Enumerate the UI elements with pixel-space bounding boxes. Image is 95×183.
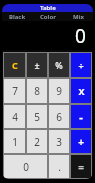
button[interactable]: 7 — [4, 79, 25, 103]
button[interactable]: 9 — [49, 79, 69, 103]
staticText: Table — [40, 4, 56, 12]
button[interactable]: Percent — [49, 53, 69, 77]
staticText: Black — [9, 13, 26, 21]
button[interactable]: Mix — [63, 12, 93, 21]
staticText: ± — [34, 59, 40, 71]
button[interactable]: 5 — [27, 105, 47, 128]
button[interactable]: 8 — [27, 79, 47, 103]
staticText: 8 — [34, 84, 40, 98]
staticText: . — [58, 160, 61, 174]
button[interactable]: Multiply — [71, 79, 91, 103]
staticText: C — [12, 59, 18, 71]
staticText: Mix — [73, 13, 84, 21]
staticText: 4 — [12, 110, 18, 124]
staticText: 0 — [23, 160, 29, 174]
staticText: 6 — [56, 110, 62, 124]
staticText: X — [78, 85, 85, 97]
button[interactable]: . — [49, 155, 69, 178]
staticText: ÷ — [78, 59, 84, 71]
button[interactable]: Divide — [71, 53, 91, 77]
staticText: % — [55, 59, 63, 71]
staticText: = — [78, 160, 84, 174]
button[interactable]: 4 — [4, 105, 25, 128]
staticText: 2 — [34, 135, 40, 149]
staticText: Color — [40, 13, 56, 21]
button[interactable]: Add — [71, 130, 91, 153]
button[interactable]: 0 — [4, 155, 47, 178]
staticText: 3 — [56, 135, 62, 149]
button[interactable]: 3 — [49, 130, 69, 153]
staticText: 0 — [75, 23, 86, 49]
button[interactable]: Toggle sign — [27, 53, 47, 77]
staticText: + — [78, 135, 84, 149]
button[interactable]: C — [4, 53, 25, 77]
button[interactable]: 1 — [4, 130, 25, 153]
staticText: 5 — [34, 110, 40, 124]
staticText: 9 — [56, 84, 62, 98]
button[interactable]: 6 — [49, 105, 69, 128]
staticText: - — [79, 109, 83, 124]
staticText: 1 — [12, 135, 18, 149]
button[interactable]: Black — [2, 12, 33, 21]
button[interactable]: Color — [33, 12, 63, 21]
staticText: 7 — [12, 84, 18, 98]
button[interactable]: 2 — [27, 130, 47, 153]
button[interactable]: Subtract — [71, 105, 91, 128]
button[interactable]: Equals — [71, 155, 91, 178]
